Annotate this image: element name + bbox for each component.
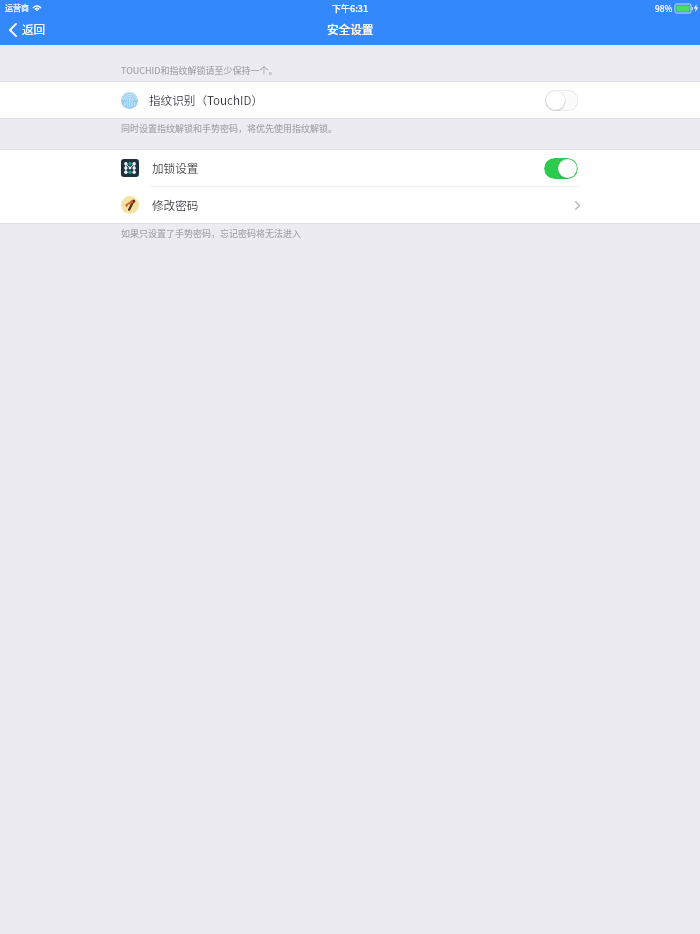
- staticText: 运营商: [5, 2, 29, 14]
- staticText: 如果只设置了手势密码，忘记密码将无法进入: [121, 227, 302, 240]
- staticText: 安全设置: [327, 21, 374, 38]
- staticText: TOUCHID和指纹解锁请至少保持一个。: [121, 64, 278, 77]
- button[interactable]: 指纹识别（TouchID）: [0, 82, 700, 118]
- staticText: 修改密码: [152, 197, 199, 214]
- staticText: 指纹识别（TouchID）: [149, 92, 264, 109]
- other: 电池电量 98%: [675, 4, 693, 13]
- button[interactable]: 修改密码: [0, 187, 700, 223]
- button[interactable]: 加锁设置: [0, 150, 700, 186]
- staticText: 加锁设置: [152, 160, 199, 177]
- button[interactable]: 指纹识别 TouchID 开关，已关闭: [545, 90, 578, 111]
- button[interactable]: 加锁设置开关，已开启: [544, 158, 578, 179]
- staticText: 98%: [655, 2, 673, 14]
- staticText: 同时设置指纹解锁和手势密码，将优先使用指纹解锁。: [121, 122, 338, 135]
- staticText: 返回: [22, 21, 46, 38]
- other: Wi-Fi: [32, 4, 42, 12]
- staticText: 下午6:31: [332, 2, 369, 15]
- button[interactable]: 返回: [0, 14, 55, 45]
